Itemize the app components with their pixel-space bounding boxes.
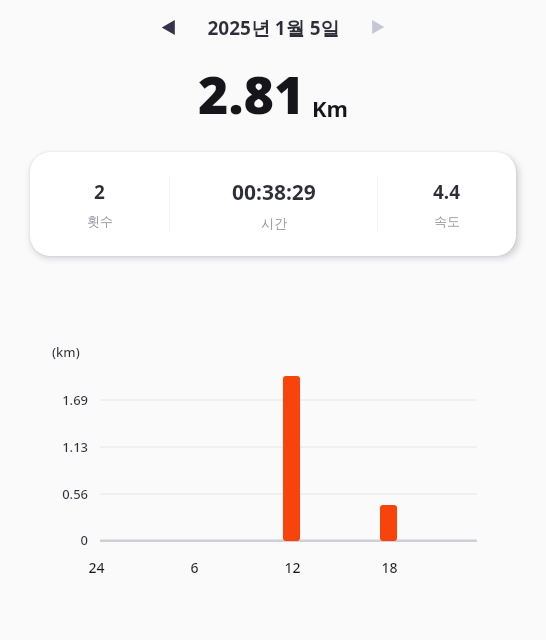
staticText: 2025년 1월 5일 (207, 15, 340, 41)
staticText: Km (312, 93, 349, 123)
staticText: 12 (284, 558, 301, 577)
staticText: 00:38:29 (232, 178, 316, 207)
button[interactable]: 2 (30, 152, 169, 256)
staticText: 0.56 (62, 485, 88, 503)
staticText: 24 (88, 558, 105, 577)
staticText: 횟수 (87, 213, 113, 229)
staticText: 4.4 (433, 179, 461, 205)
staticText: 속도 (434, 213, 460, 229)
staticText: 0 (80, 531, 88, 549)
staticText: 시간 (261, 215, 287, 231)
button[interactable]: 2 (30, 152, 516, 256)
staticText: 6 (190, 558, 199, 577)
button[interactable]: 다음 날짜 (358, 7, 398, 47)
staticText: 2 (94, 179, 105, 205)
staticText: 1.69 (62, 391, 88, 409)
staticText: 1.13 (62, 438, 88, 456)
staticText: (km) (52, 343, 80, 361)
button[interactable]: 이전 날짜 (148, 7, 188, 47)
staticText: 18 (381, 558, 398, 577)
button[interactable]: 00:38:29 (170, 152, 377, 256)
staticText: 2.81 (198, 58, 305, 129)
button[interactable]: 4.4 (378, 152, 516, 256)
